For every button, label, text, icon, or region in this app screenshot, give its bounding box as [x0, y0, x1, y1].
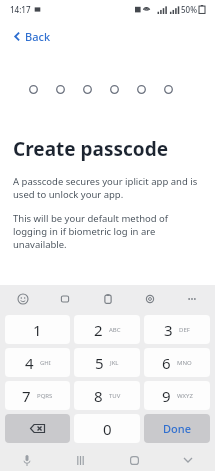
button[interactable]: 1	[5, 315, 70, 344]
button[interactable]: More options	[183, 290, 201, 308]
button[interactable]: Done	[144, 414, 210, 443]
staticText: JKL	[110, 359, 119, 367]
button[interactable]: 4	[5, 348, 70, 377]
button[interactable]: 6	[144, 348, 210, 377]
staticText: 5	[95, 353, 104, 373]
staticText: 0	[103, 419, 112, 439]
button[interactable]: Voice input	[0, 449, 53, 471]
staticText: 9	[162, 386, 171, 406]
button[interactable]: Hide keyboard	[161, 449, 215, 471]
staticText: 3	[164, 320, 173, 340]
staticText: 4	[25, 353, 34, 373]
button[interactable]: GIF	[56, 290, 74, 308]
button[interactable]: Back	[11, 26, 54, 47]
staticText: 7	[22, 386, 31, 406]
staticText: DEF	[179, 326, 190, 334]
button[interactable]: Settings	[141, 290, 159, 308]
staticText: 2	[94, 320, 103, 340]
button[interactable]: 9	[144, 381, 210, 410]
staticText: 8	[94, 386, 103, 406]
button[interactable]: Backspace	[5, 414, 70, 443]
staticText: 1	[33, 320, 42, 340]
button[interactable]: 7	[5, 381, 70, 410]
staticText: Done	[163, 421, 191, 436]
button[interactable]: Recents	[53, 449, 107, 471]
button[interactable]: Clipboard	[99, 290, 117, 308]
button[interactable]: Emoji	[14, 290, 32, 308]
staticText: A passcode secures your iplicit app and …	[13, 175, 201, 201]
staticText: 6	[162, 353, 171, 373]
staticText: ABC	[109, 326, 121, 334]
staticText: TUV	[109, 392, 121, 400]
button[interactable]: 5	[74, 348, 140, 377]
staticText: This will be your default method of logg…	[13, 212, 201, 251]
button[interactable]: Home	[107, 449, 161, 471]
staticText: 50%	[181, 4, 197, 15]
staticText: GHI	[40, 359, 51, 367]
staticText: Create passcode	[13, 136, 169, 162]
staticText: 14:17	[10, 4, 31, 15]
button[interactable]: 3	[144, 315, 210, 344]
button[interactable]: 8	[74, 381, 140, 410]
button[interactable]: 0	[74, 414, 140, 443]
staticText: MNO	[177, 359, 192, 367]
button[interactable]: 2	[74, 315, 140, 344]
staticText: Back	[25, 29, 51, 44]
staticText: WXYZ	[177, 392, 193, 400]
staticText: PQRS	[37, 392, 53, 400]
